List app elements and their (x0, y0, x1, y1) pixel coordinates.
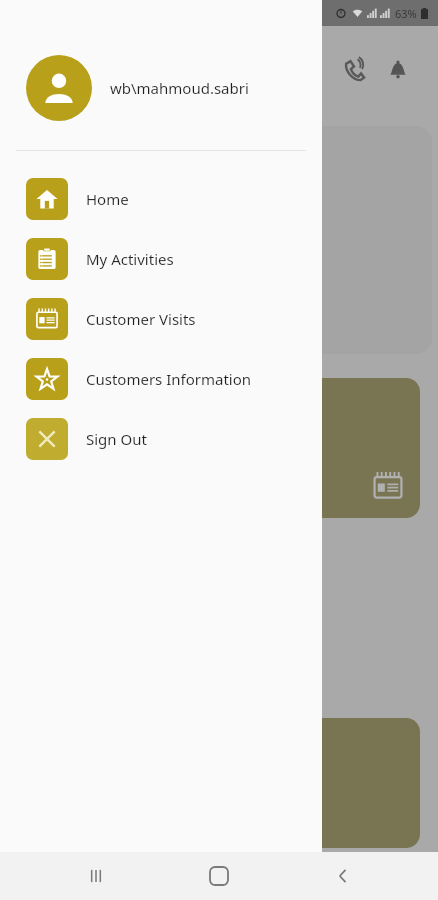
button[interactable]: Home (191, 852, 247, 900)
button[interactable]: Recents (68, 852, 124, 900)
button[interactable]: Sign Out (0, 409, 322, 469)
button[interactable]: Customers Information (0, 349, 322, 409)
button[interactable] (322, 0, 438, 900)
button[interactable]: Back (315, 852, 371, 900)
staticText: Sign Out (86, 429, 147, 449)
button[interactable] (32, 126, 432, 354)
staticText: wb\mahmoud.sabri (110, 78, 249, 98)
staticText: Home (86, 189, 129, 209)
staticText: Customer Visits (86, 309, 196, 329)
button[interactable]: Customer Visits (0, 289, 322, 349)
button[interactable]: Call (336, 52, 372, 88)
button[interactable]: 3 15:00:12.0 (196, 718, 420, 848)
staticText: My Activities (86, 249, 174, 269)
button[interactable]: Home (0, 169, 322, 229)
staticText: 63% (395, 6, 417, 21)
button[interactable]: Customers Visits (196, 378, 420, 518)
staticText: Customers Information (86, 369, 252, 389)
button[interactable]: Notifications (380, 52, 416, 88)
button[interactable]: My Activities (0, 229, 322, 289)
button[interactable]: wb\mahmoud.sabri (0, 26, 322, 150)
